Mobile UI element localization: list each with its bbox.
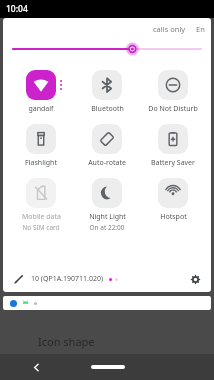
button[interactable]: Brightness	[13, 40, 201, 58]
staticText: Auto-rotate	[88, 158, 126, 168]
button[interactable]: Settings	[187, 271, 203, 287]
staticText: Mobile data	[22, 212, 61, 222]
button[interactable]: gandalf	[9, 68, 73, 116]
button[interactable]	[3, 296, 211, 310]
staticText: Night Light	[89, 212, 126, 222]
staticText: 10 (QP1A.190711.020)	[31, 274, 103, 284]
staticText: Bluetooth	[91, 104, 124, 114]
staticText: Icon shape	[38, 334, 95, 349]
staticText: No SIM card	[22, 223, 60, 232]
button[interactable]: Home	[72, 354, 143, 380]
staticText: Hotspot	[160, 212, 187, 222]
button[interactable]: Flashlight	[9, 122, 73, 170]
staticText: 10:04	[6, 3, 28, 15]
staticText: Do Not Disturb	[148, 104, 198, 114]
button[interactable]: Night Light	[75, 176, 139, 234]
button[interactable]: Edit tiles	[11, 271, 27, 287]
button[interactable]: Auto-rotate	[75, 122, 139, 170]
button[interactable]: Hotspot	[141, 176, 205, 224]
staticText: gandalf	[28, 104, 54, 114]
button[interactable]: Do Not Disturb	[141, 68, 205, 116]
staticText: Flashlight	[25, 158, 57, 168]
staticText: Battery Saver	[151, 158, 195, 168]
staticText: Squircle	[38, 352, 68, 363]
button[interactable]: Back	[0, 354, 72, 380]
button[interactable]: Bluetooth	[75, 68, 139, 116]
staticText: En	[196, 24, 205, 34]
button[interactable]: Mobile data	[9, 176, 73, 234]
staticText: calls only	[153, 24, 186, 34]
staticText: On at 22:00	[89, 223, 125, 232]
button[interactable]: Battery Saver	[141, 122, 205, 170]
